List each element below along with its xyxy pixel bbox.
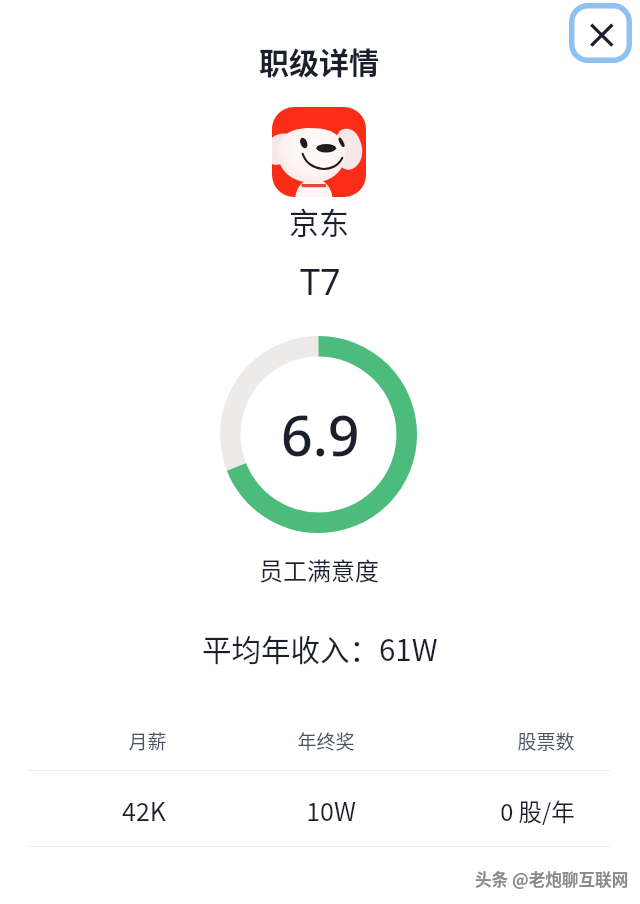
button[interactable]: 京东 bbox=[272, 107, 366, 197]
staticText: 10W bbox=[306, 792, 356, 828]
button[interactable]: 42K bbox=[59, 772, 229, 847]
button[interactable]: 10W bbox=[236, 772, 426, 847]
staticText: 京东 bbox=[289, 199, 349, 242]
button[interactable]: 年终奖 bbox=[231, 712, 421, 770]
staticText: 股票数 bbox=[517, 727, 575, 755]
staticText: 员工满意度 bbox=[259, 552, 379, 587]
staticText: 头条 @老炮聊互联网 bbox=[475, 867, 629, 891]
staticText: T7 bbox=[300, 257, 341, 306]
staticText: 6.9 bbox=[281, 397, 360, 473]
staticText: 平均年收入：61W bbox=[202, 627, 438, 670]
staticText: 42K bbox=[122, 792, 166, 828]
button[interactable]: 股票数 bbox=[461, 712, 631, 770]
staticText: 年终奖 bbox=[297, 727, 355, 755]
button[interactable]: Close bbox=[569, 3, 632, 63]
staticText: 0 股/年 bbox=[500, 794, 575, 828]
button[interactable]: 0 股/年 bbox=[452, 773, 622, 848]
button[interactable]: 月薪 bbox=[62, 712, 232, 770]
staticText: 职级详情 bbox=[259, 39, 379, 82]
staticText: 月薪 bbox=[128, 727, 167, 755]
